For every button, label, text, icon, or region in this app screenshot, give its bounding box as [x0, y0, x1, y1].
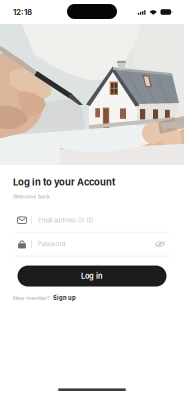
- staticText: Log in: [81, 272, 103, 280]
- button[interactable]: Log in: [17, 265, 166, 286]
- staticText: Log in to your Account: [13, 176, 115, 188]
- staticText: Sign up: [53, 294, 76, 301]
- staticText: New member?: [13, 295, 50, 301]
- button[interactable]: Password: [13, 233, 171, 256]
- staticText: Welcome back: [13, 193, 50, 200]
- staticText: 12:18: [13, 7, 32, 17]
- staticText: Password: [38, 240, 66, 248]
- button[interactable]: Email address Or ID: [13, 209, 171, 233]
- staticText: Email address Or ID: [38, 217, 93, 224]
- button[interactable]: New member?: [13, 286, 171, 301]
